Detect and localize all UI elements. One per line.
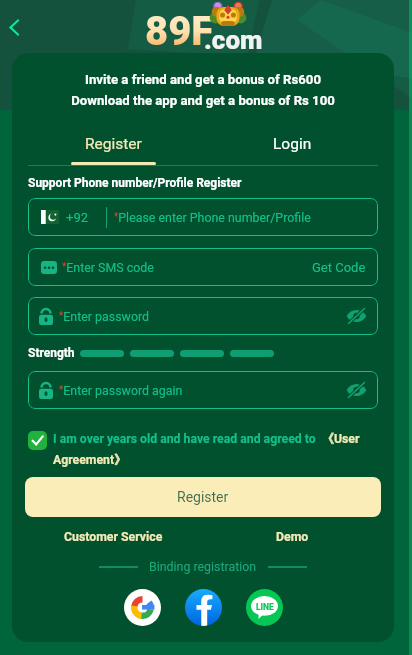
button[interactable]: Show password (345, 379, 367, 401)
staticText: Login (273, 135, 312, 153)
button[interactable]: Show password (345, 305, 367, 327)
staticText: *Enter password (59, 309, 150, 324)
staticText: Demo (276, 530, 309, 544)
staticText: Invite a friend and get a bonus of Rs600 (85, 72, 321, 87)
button[interactable]: Get Code (312, 260, 366, 275)
staticText: Register (177, 489, 229, 505)
staticText: I am over years old and have read and ag… (53, 431, 380, 467)
button[interactable]: Sign in with Facebook (185, 589, 222, 626)
staticText: *Enter password again (59, 383, 183, 398)
button[interactable]: Sign in with LINE (246, 589, 283, 626)
staticText: Strength (28, 346, 75, 360)
button[interactable]: Customer Service (64, 530, 163, 544)
staticText: Support Phone number/Profile Register (28, 176, 242, 190)
staticText: Register (85, 135, 142, 153)
button[interactable]: +92 (28, 198, 378, 236)
staticText: Customer Service (64, 530, 163, 544)
button[interactable]: *Enter password (28, 297, 378, 335)
staticText: .com (204, 25, 263, 55)
button[interactable]: *Enter password again (28, 371, 378, 409)
button[interactable]: *Enter SMS code (28, 248, 378, 286)
staticText: 89F (145, 8, 214, 55)
button[interactable]: I am over years old and have read and ag… (28, 431, 380, 467)
button[interactable]: Sign in with Google (124, 589, 161, 626)
staticText: Binding registration (149, 559, 257, 574)
button[interactable]: Register (24, 133, 203, 165)
button[interactable]: Login (203, 133, 382, 165)
staticText: Download the app and get a bonus of Rs 1… (71, 93, 335, 108)
staticText: LINE (256, 602, 274, 612)
staticText: *Please enter Phone number/Profile (114, 210, 311, 225)
button[interactable]: Demo (276, 530, 309, 544)
button[interactable]: Back (0, 12, 29, 42)
staticText: *Enter SMS code (62, 260, 154, 275)
staticText: Get Code (312, 260, 366, 275)
staticText: +92 (66, 210, 88, 225)
button[interactable]: Register (25, 477, 381, 517)
